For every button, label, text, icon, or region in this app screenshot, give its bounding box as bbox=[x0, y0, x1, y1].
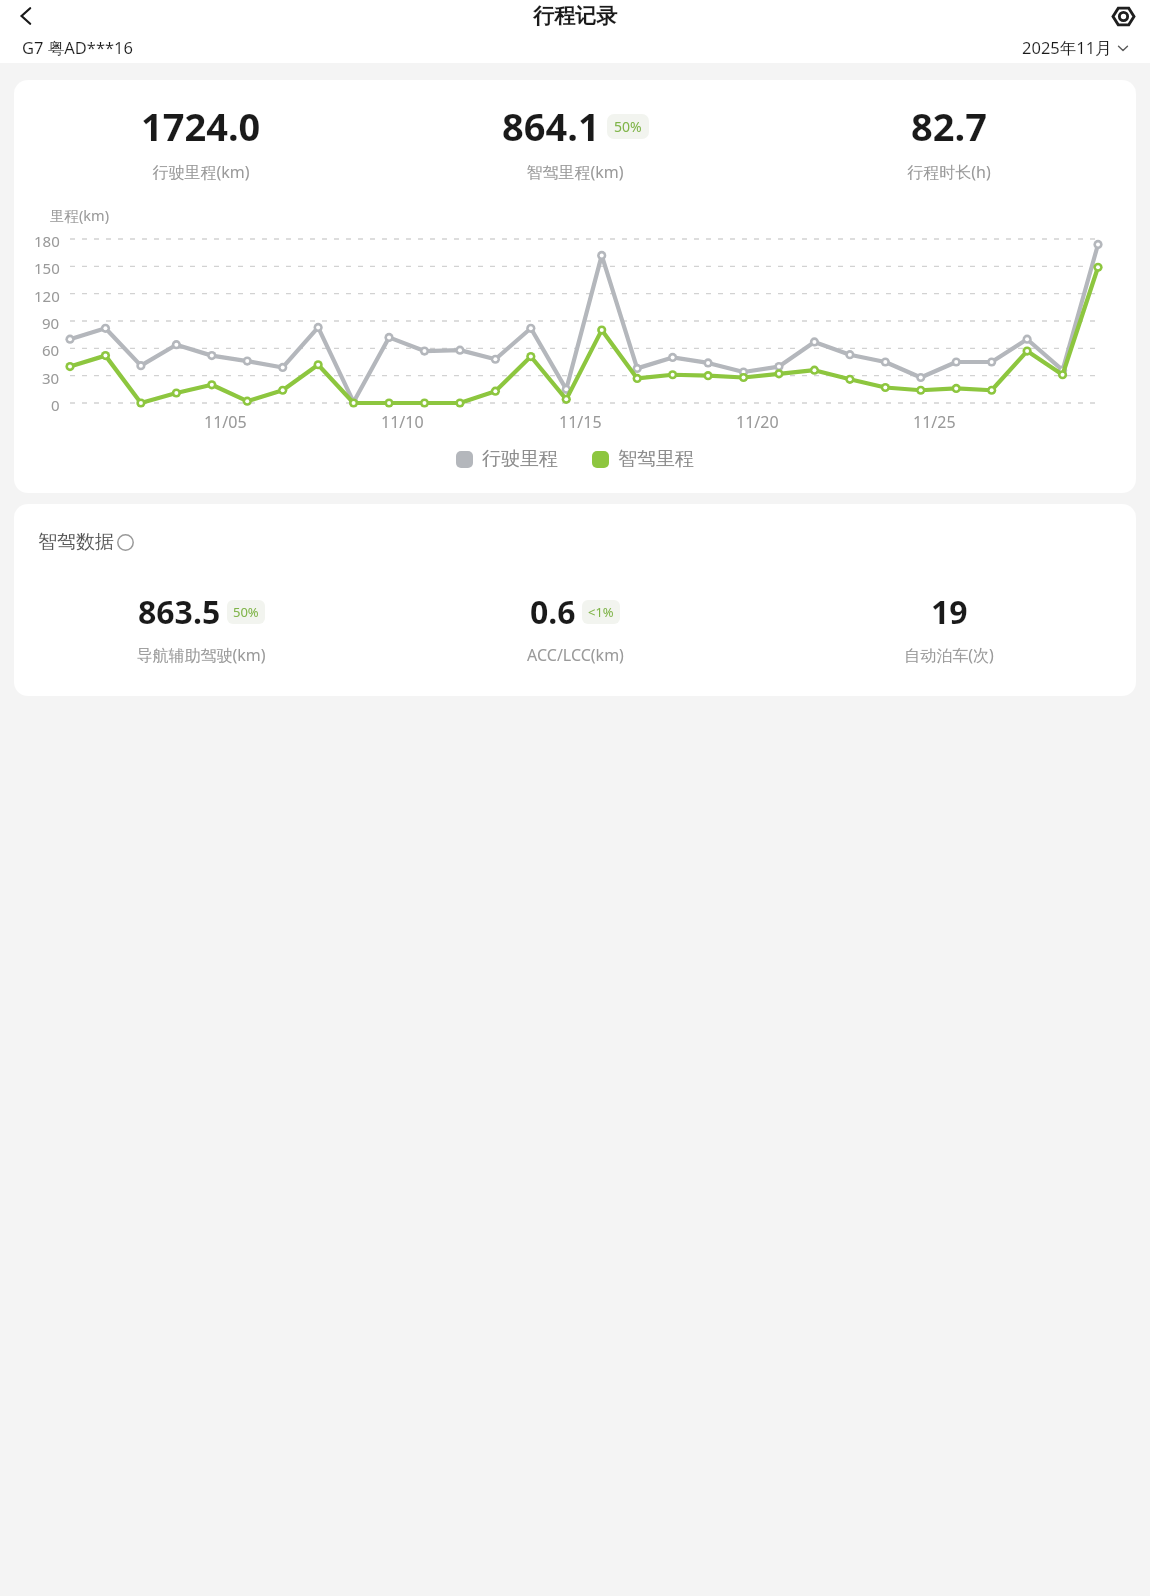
staticText: 11/05 bbox=[204, 411, 247, 433]
staticText: 864.1 bbox=[502, 100, 600, 152]
staticText: 0 bbox=[51, 395, 60, 411]
button[interactable]: 0.6 bbox=[388, 590, 762, 666]
staticText: 11/20 bbox=[736, 411, 779, 433]
staticText: 行驶里程 bbox=[482, 447, 558, 471]
button[interactable]: 19 bbox=[762, 590, 1136, 666]
staticText: 智驾里程(km) bbox=[526, 161, 624, 183]
staticText: <1% bbox=[588, 603, 614, 621]
other: Help bbox=[117, 534, 134, 551]
staticText: G7 粤AD***16 bbox=[22, 36, 133, 59]
button[interactable]: 863.5 bbox=[14, 590, 388, 666]
staticText: 19 bbox=[931, 590, 968, 634]
staticText: 里程(km) bbox=[50, 205, 110, 225]
staticText: 1724.0 bbox=[141, 100, 261, 152]
button[interactable]: 82.7 bbox=[762, 100, 1136, 183]
staticText: 导航辅助驾驶(km) bbox=[136, 644, 266, 666]
staticText: 11/15 bbox=[559, 411, 602, 433]
staticText: 50% bbox=[233, 603, 259, 621]
staticText: 11/25 bbox=[913, 411, 956, 433]
staticText: 180 bbox=[34, 231, 60, 247]
button[interactable]: 2025年11月 bbox=[1022, 36, 1130, 59]
staticText: 自动泊车(次) bbox=[904, 644, 994, 666]
staticText: 智驾里程 bbox=[618, 447, 694, 471]
button[interactable]: 864.1 bbox=[388, 100, 762, 183]
button[interactable]: 1724.0 bbox=[14, 100, 388, 183]
button[interactable]: Back bbox=[13, 3, 39, 29]
staticText: 50% bbox=[614, 117, 642, 136]
button[interactable]: Settings bbox=[1109, 2, 1137, 30]
staticText: 150 bbox=[34, 258, 60, 274]
staticText: 智驾数据 bbox=[38, 530, 114, 554]
staticText: 11/10 bbox=[381, 411, 424, 433]
button[interactable]: 智驾数据 bbox=[38, 530, 134, 554]
staticText: 行驶里程(km) bbox=[152, 161, 250, 183]
staticText: 863.5 bbox=[138, 590, 221, 634]
staticText: 82.7 bbox=[911, 100, 987, 152]
staticText: 90 bbox=[42, 313, 60, 329]
staticText: ACC/LCC(km) bbox=[527, 644, 624, 666]
staticText: 2025年11月 bbox=[1022, 36, 1112, 59]
staticText: 0.6 bbox=[530, 590, 576, 634]
staticText: 30 bbox=[42, 368, 60, 384]
staticText: 行程时长(h) bbox=[907, 161, 991, 183]
staticText: 120 bbox=[34, 286, 60, 302]
staticText: 60 bbox=[42, 340, 60, 356]
staticText: 行程记录 bbox=[533, 3, 617, 29]
